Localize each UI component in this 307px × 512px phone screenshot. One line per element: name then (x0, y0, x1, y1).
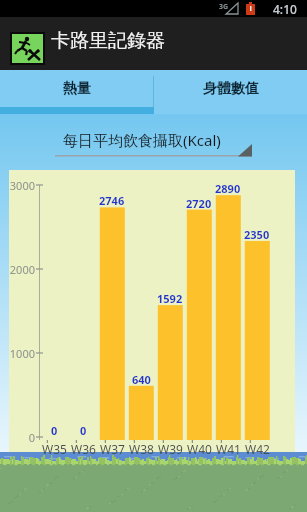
staticText: 0 (80, 423, 87, 438)
staticText: 卡路里記錄器 (51, 29, 165, 53)
staticText: 2890 (215, 181, 241, 196)
staticText: 1592 (157, 291, 183, 306)
staticText: 640 (132, 372, 151, 387)
staticText: W37 (100, 441, 125, 457)
staticText: 2000 (9, 262, 35, 276)
staticText: 熱量 (63, 80, 91, 98)
staticText: W39 (158, 441, 183, 457)
staticText: W36 (71, 441, 96, 457)
staticText: 2746 (99, 193, 125, 208)
staticText: W38 (129, 441, 154, 457)
staticText: 3G (219, 2, 229, 12)
staticText: W40 (187, 441, 212, 457)
staticText: 身體數值 (203, 80, 259, 98)
button[interactable]: 身體數值 (154, 70, 307, 114)
staticText: W41 (216, 441, 241, 457)
staticText: 1000 (9, 346, 35, 360)
staticText: 2350 (244, 227, 270, 242)
button[interactable]: 每日平均飲食攝取(Kcal) (52, 122, 255, 158)
staticText: W35 (42, 441, 67, 457)
button[interactable]: 熱量 (0, 70, 154, 114)
staticText: 0 (28, 430, 35, 444)
staticText: 每日平均飲食攝取(Kcal) (63, 130, 221, 150)
staticText: 0 (51, 423, 58, 438)
staticText: W42 (245, 441, 270, 457)
staticText: 2720 (186, 196, 212, 211)
staticText: 4:10 (273, 1, 297, 17)
staticText: 3000 (9, 178, 35, 192)
